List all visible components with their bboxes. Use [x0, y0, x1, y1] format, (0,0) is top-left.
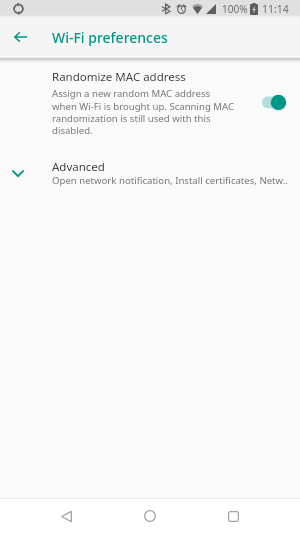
staticText: 100%	[222, 2, 248, 16]
button[interactable]: Navigate up	[1, 18, 39, 56]
staticText: Assign a new random MAC address when Wi-…	[52, 87, 236, 136]
button[interactable]: Back	[54, 504, 78, 528]
button[interactable]: Randomize MAC address toggle	[255, 86, 293, 117]
staticText: 11:14	[262, 2, 289, 16]
button[interactable]: Home	[138, 504, 162, 528]
staticText: Wi-Fi preferences	[52, 28, 168, 47]
staticText: Advanced	[52, 159, 105, 175]
button[interactable]	[0, 150, 300, 194]
button[interactable]: Expand Advanced	[2, 157, 34, 189]
button[interactable]: Recent apps	[221, 504, 245, 528]
staticText: Randomize MAC address	[52, 69, 186, 85]
staticText: Open network notification, Install certi…	[52, 174, 288, 187]
button[interactable]	[0, 62, 300, 144]
